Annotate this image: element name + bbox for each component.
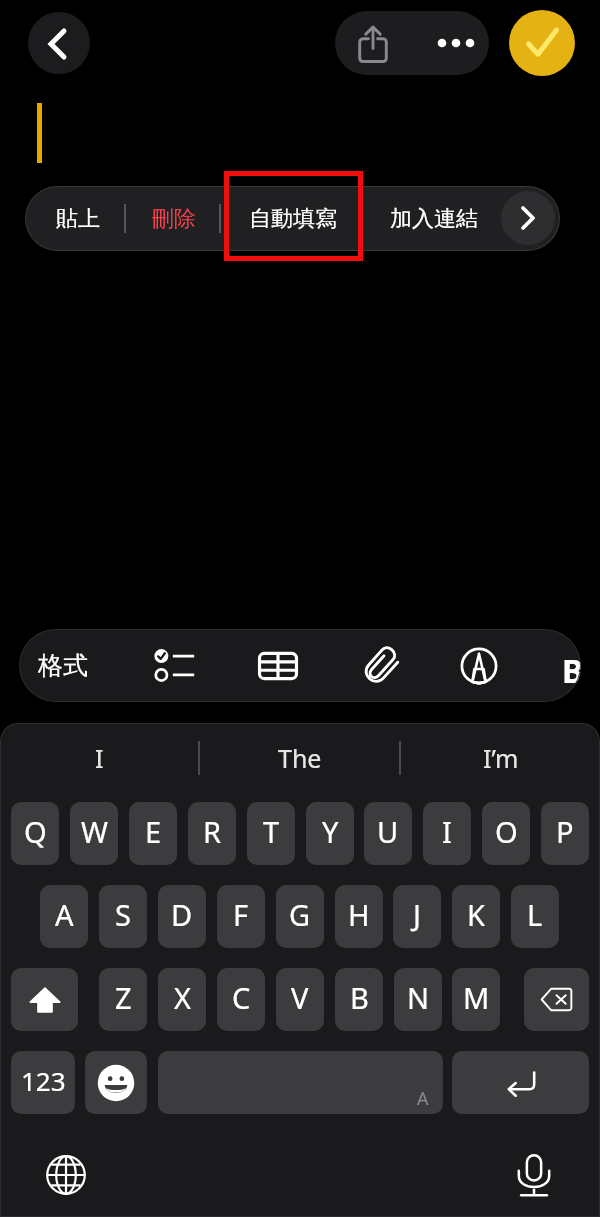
button[interactable]: P <box>541 802 589 865</box>
staticText: 加入連結 <box>390 205 478 233</box>
button[interactable]: B <box>335 968 383 1031</box>
button[interactable]: Q <box>11 802 59 865</box>
staticText: M <box>463 978 490 1017</box>
button[interactable]: J <box>393 885 441 948</box>
button[interactable]: M <box>452 968 500 1031</box>
staticText: X <box>174 978 191 1017</box>
staticText: 貼上 <box>56 205 100 233</box>
button[interactable]: 刪除 <box>128 186 219 251</box>
staticText: 格式 <box>38 650 88 681</box>
button[interactable]: E <box>129 802 177 865</box>
staticText: Y <box>322 812 339 851</box>
button[interactable]: Y <box>306 802 354 865</box>
button[interactable]: F <box>217 885 265 948</box>
button[interactable]: V <box>276 968 324 1031</box>
button[interactable]: More actions <box>501 191 555 245</box>
staticText: C <box>232 978 251 1017</box>
staticText: B <box>350 978 369 1017</box>
button[interactable]: The <box>200 723 399 793</box>
button[interactable]: Emoji <box>85 1051 147 1114</box>
button[interactable]: U <box>364 802 412 865</box>
button[interactable]: Done <box>509 10 575 76</box>
button[interactable]: I <box>0 723 198 793</box>
staticText: H <box>348 895 370 934</box>
staticText: 自動填寫 <box>249 205 337 233</box>
staticText: A <box>55 895 74 934</box>
staticText: N <box>407 978 430 1017</box>
staticText: I’m <box>483 741 519 775</box>
button[interactable]: 123 <box>11 1051 75 1114</box>
staticText: P <box>556 812 574 851</box>
button[interactable]: Dictation <box>506 1147 562 1203</box>
button[interactable]: O <box>482 802 530 865</box>
button[interactable]: Shift <box>11 968 78 1031</box>
button[interactable]: Back <box>28 12 90 74</box>
button[interactable]: 加入連結 <box>364 186 504 251</box>
button[interactable]: C <box>217 968 265 1031</box>
button[interactable]: L <box>511 885 559 948</box>
staticText: O <box>495 812 518 851</box>
button[interactable]: N <box>394 968 442 1031</box>
button[interactable]: Table <box>240 629 316 702</box>
button[interactable]: A <box>40 885 88 948</box>
staticText: L <box>527 895 543 934</box>
button[interactable]: Bold <box>539 629 581 702</box>
staticText: U <box>377 812 399 851</box>
staticText: The <box>278 741 322 775</box>
button[interactable]: H <box>335 885 383 948</box>
button[interactable]: More options <box>412 11 489 75</box>
button[interactable]: 格式 <box>19 629 107 702</box>
staticText: T <box>263 812 280 851</box>
button[interactable]: I <box>423 802 471 865</box>
button[interactable]: Markup <box>441 629 517 702</box>
staticText: Z <box>115 978 132 1017</box>
staticText: D <box>171 895 193 934</box>
button[interactable]: I’m <box>401 723 600 793</box>
button[interactable]: 貼上 <box>28 186 128 251</box>
staticText: B <box>562 649 581 693</box>
button[interactable]: W <box>70 802 118 865</box>
staticText: I <box>442 812 452 851</box>
button[interactable]: R <box>188 802 236 865</box>
button[interactable]: T <box>247 802 295 865</box>
button[interactable]: X <box>158 968 206 1031</box>
staticText: K <box>467 895 485 934</box>
staticText: R <box>203 812 222 851</box>
button[interactable]: Attachment <box>343 629 419 702</box>
button[interactable]: D <box>158 885 206 948</box>
button[interactable]: G <box>276 885 324 948</box>
button[interactable]: Share <box>335 11 412 75</box>
staticText: V <box>291 978 309 1017</box>
button[interactable]: Space <box>158 1051 443 1114</box>
button[interactable]: Backspace <box>524 968 589 1031</box>
staticText: W <box>81 812 108 851</box>
staticText: J <box>413 895 421 934</box>
button[interactable]: Switch keyboard <box>38 1147 94 1203</box>
staticText: Q <box>24 812 47 851</box>
button[interactable]: 自動填寫 <box>223 186 363 251</box>
staticText: S <box>115 895 131 934</box>
staticText: G <box>289 895 311 934</box>
button[interactable]: S <box>99 885 147 948</box>
button[interactable]: Z <box>99 968 147 1031</box>
button[interactable]: Return <box>452 1051 589 1114</box>
button[interactable]: K <box>452 885 500 948</box>
staticText: A <box>417 1086 429 1111</box>
staticText: 刪除 <box>152 205 196 233</box>
staticText: E <box>145 812 162 851</box>
staticText: F <box>233 895 249 934</box>
staticText: 123 <box>21 1063 66 1098</box>
button[interactable]: Checklist <box>136 629 212 702</box>
staticText: I <box>95 741 104 775</box>
